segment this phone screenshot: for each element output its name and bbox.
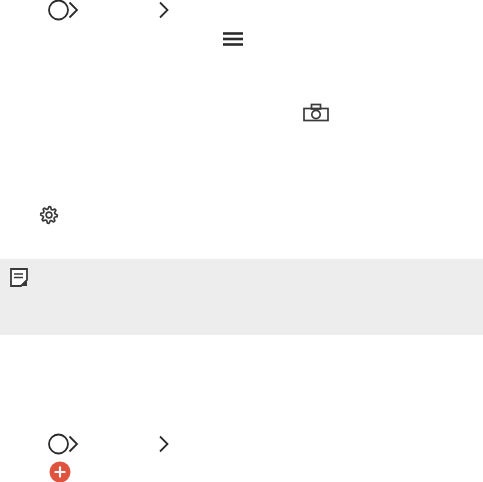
button[interactable]: Note <box>9 267 29 289</box>
button[interactable]: Camera <box>302 102 330 126</box>
button[interactable]: Settings <box>38 204 60 226</box>
button[interactable]: Add <box>49 461 71 482</box>
button[interactable]: Open <box>48 432 84 456</box>
button[interactable]: Menu <box>220 28 246 50</box>
button[interactable]: Next <box>157 432 177 456</box>
button[interactable]: Open <box>48 0 84 22</box>
button[interactable] <box>0 259 483 335</box>
button[interactable]: Next <box>157 0 177 22</box>
